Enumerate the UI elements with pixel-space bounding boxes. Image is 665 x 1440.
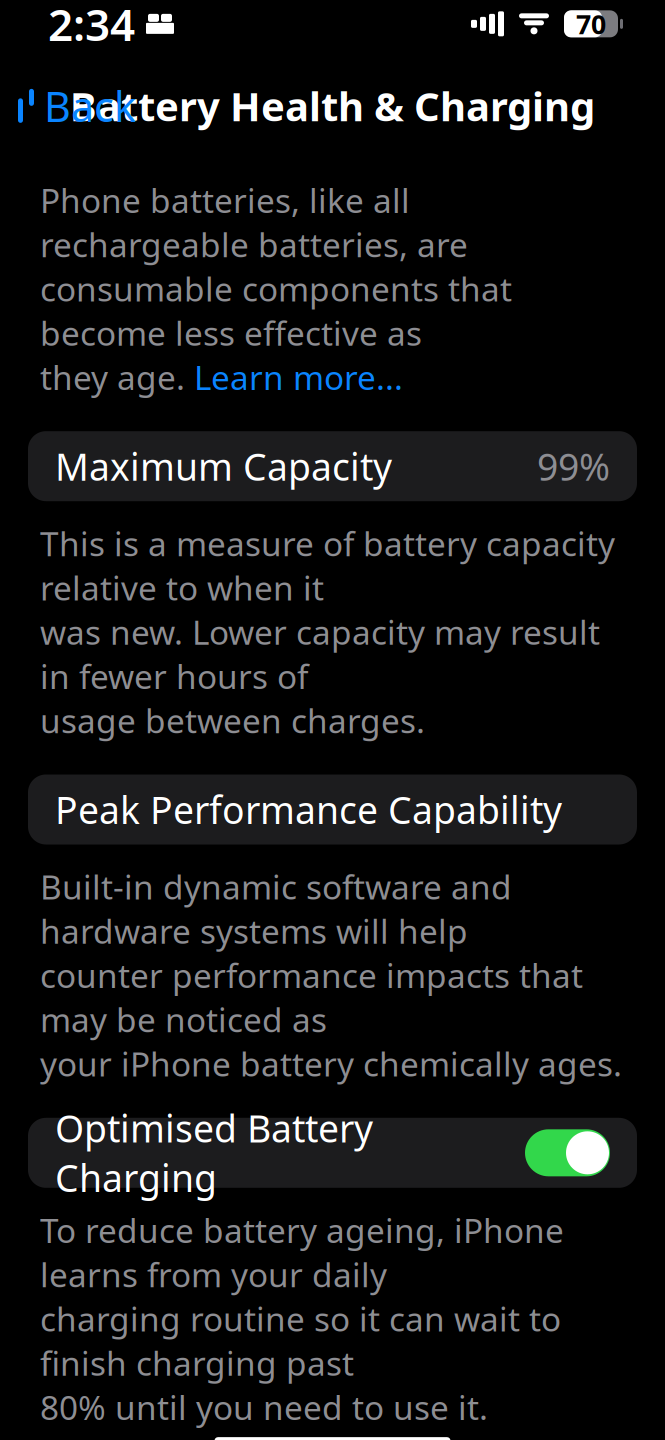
staticText: Phone batteries, like all rechargeable b…	[40, 178, 468, 266]
staticText: 70	[576, 6, 606, 41]
staticText: was new. Lower capacity may result in fe…	[40, 610, 600, 698]
staticText: Battery Health & Charging	[70, 79, 595, 132]
staticText: Learn more...	[194, 355, 403, 399]
button[interactable]: Maximum Capacity	[28, 431, 637, 501]
button[interactable]: Optimised Battery Charging	[28, 1118, 637, 1188]
button[interactable]: Peak Performance Capability	[28, 774, 637, 844]
staticText: To reduce battery ageing, iPhone learns …	[40, 1208, 564, 1296]
staticText: they age.	[40, 355, 194, 399]
staticText: Optimised Battery Charging	[55, 1103, 373, 1202]
staticText: 99%	[537, 441, 610, 491]
staticText: usage between charges.	[40, 698, 425, 742]
staticText: counter performance impacts that may be …	[40, 953, 583, 1041]
staticText: your iPhone battery chemically ages.	[40, 1042, 622, 1086]
staticText: Maximum Capacity	[55, 441, 392, 491]
staticText: This is a measure of battery capacity re…	[40, 521, 615, 610]
staticText: 80% until you need to use it.	[40, 1385, 488, 1429]
staticText: Back	[44, 78, 136, 133]
staticText: Built-in dynamic software and hardware s…	[40, 864, 512, 953]
staticText: 2:34	[48, 0, 135, 53]
button[interactable]: Back	[0, 68, 136, 143]
staticText: consumable components that become less e…	[40, 266, 512, 355]
staticText: Peak Performance Capability	[55, 785, 562, 834]
button[interactable]: Learn more...	[194, 355, 403, 399]
staticText: charging routine so it can wait to finis…	[40, 1296, 561, 1385]
